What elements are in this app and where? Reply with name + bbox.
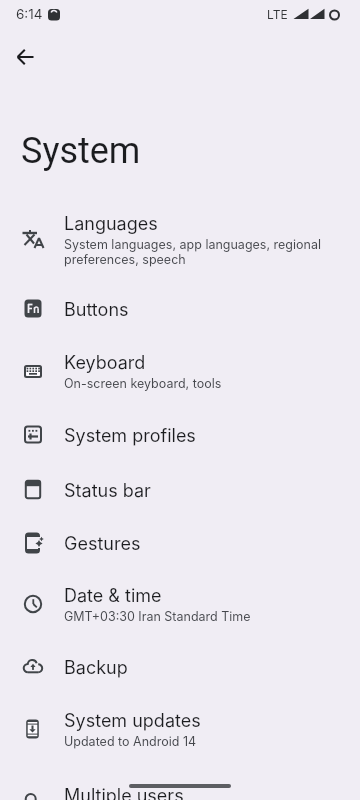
button[interactable]: Multiple users bbox=[0, 764, 360, 800]
staticText: Multiple users bbox=[64, 785, 184, 800]
button[interactable]: Backup bbox=[0, 639, 360, 694]
staticText: 6:14 bbox=[16, 6, 43, 22]
button[interactable]: Status bar bbox=[0, 462, 360, 517]
staticText: Status bar bbox=[64, 480, 151, 502]
staticText: System profiles bbox=[64, 425, 196, 447]
staticText: System updates bbox=[64, 710, 201, 732]
staticText: Keyboard bbox=[64, 352, 146, 374]
staticText: LTE bbox=[267, 7, 288, 22]
button[interactable]: System updates bbox=[0, 694, 360, 764]
staticText: Languages bbox=[64, 213, 158, 235]
staticText: Buttons bbox=[64, 299, 129, 321]
staticText: Date & time bbox=[64, 585, 162, 607]
button[interactable]: System profiles bbox=[0, 407, 360, 462]
button[interactable]: Date & time bbox=[0, 569, 360, 639]
staticText: Backup bbox=[64, 657, 128, 679]
staticText: System languages, app languages, regiona… bbox=[64, 237, 321, 268]
staticText: Gestures bbox=[64, 533, 141, 555]
staticText: System bbox=[21, 130, 141, 172]
button[interactable]: Buttons bbox=[0, 281, 360, 336]
button[interactable] bbox=[2, 32, 50, 80]
button[interactable]: Gestures bbox=[0, 517, 360, 569]
staticText: GMT+03:30 Iran Standard Time bbox=[64, 609, 251, 624]
button[interactable]: Keyboard bbox=[0, 336, 360, 407]
staticText: On-screen keyboard, tools bbox=[64, 376, 222, 391]
button[interactable]: Languages bbox=[0, 194, 360, 281]
staticText: Updated to Android 14 bbox=[64, 734, 197, 749]
